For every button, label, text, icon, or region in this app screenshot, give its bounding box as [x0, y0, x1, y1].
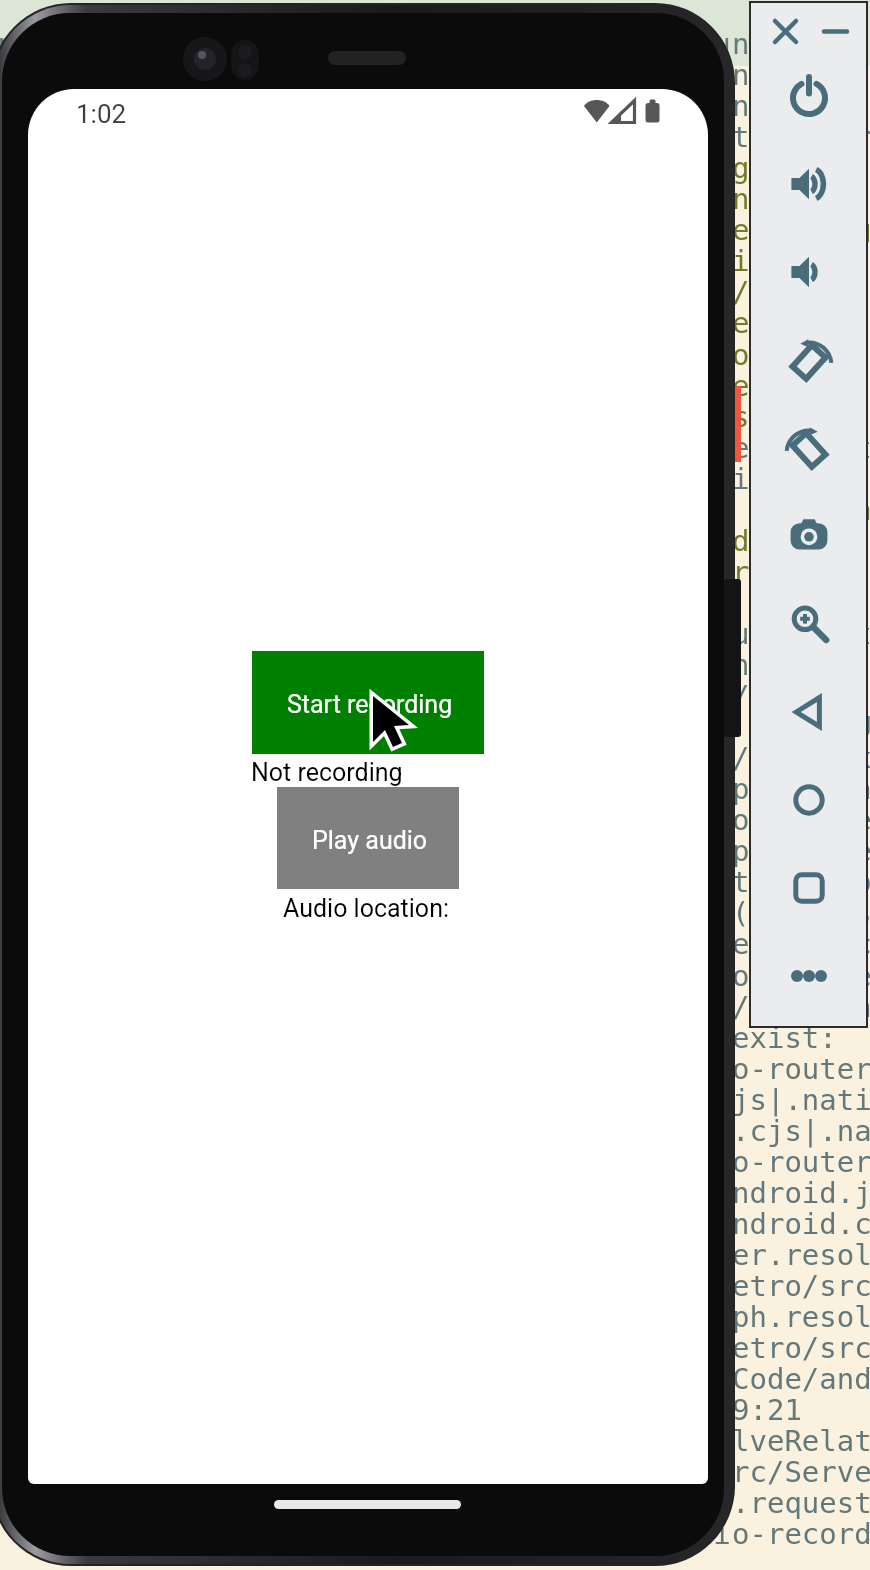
staticText: LOG Stopping recording.. file:/ — [155, 275, 732, 309]
staticText: //data — [732, 275, 837, 309]
staticText: LOG Stopping playback of soun — [190, 524, 732, 558]
staticText: cache — [732, 586, 837, 620]
staticText: n-back — [732, 27, 837, 61]
staticText: Play audio — [312, 826, 428, 855]
staticText: g":101} — [732, 151, 855, 185]
staticText: from /Users — [732, 710, 870, 744]
button[interactable]: Volume down — [749, 228, 868, 316]
staticText: LOG Audio recording permission gra — [102, 182, 731, 216]
staticText: iOS Bundled 102ms node_modules/expo-rout… — [0, 648, 731, 682]
staticText: Not recording — [251, 758, 403, 787]
staticText: /Users/x/Projects/audio-rec/node_modules… — [0, 1207, 535, 1241]
button[interactable]: Overview — [749, 844, 868, 932]
staticText: at path — [732, 493, 870, 527]
staticText: LOG Recording started with sett — [155, 244, 732, 278]
staticText: ry — [732, 555, 767, 589]
staticText: Unable to resolve module ./app/index fro… — [0, 1021, 517, 1055]
staticText: at processModule (metro/src/DeltaBundler… — [0, 1455, 727, 1489]
staticText: /Users/x/app — [732, 741, 870, 775]
staticText: etro/src/nod — [732, 927, 870, 961]
staticText: ings — [732, 244, 802, 278]
staticText: /Users/x/Projects/audio-recording/node_m — [0, 803, 731, 837]
staticText: LOG file:///data/user/0/com.an — [172, 338, 731, 372]
staticText: Start recording — [287, 690, 453, 719]
staticText: 9:21 — [732, 1393, 802, 1427]
staticText: at traverseDependencies.js:13 — [155, 1393, 732, 1427]
staticText: lveRelativePath.js:224:33 — [732, 1424, 870, 1458]
staticText: ph.resolve (metro/src/nod — [732, 1300, 870, 1334]
staticText: .cjs|.native.cjs|.cjs|.nat — [732, 1114, 870, 1148]
staticText: LOG audio recorded and stored — [190, 493, 732, 527]
button[interactable]: Home — [749, 756, 868, 844]
staticText: LOG unloading sound from memo — [190, 555, 732, 589]
staticText: n-back — [732, 89, 837, 123]
staticText: error Unable to resolve module ./app/ind… — [0, 710, 731, 744]
staticText: rc/Server.js:132:12) — [732, 1455, 870, 1489]
staticText: /Users/x/Projects/audio-rec/node_modules… — [0, 1176, 535, 1210]
button[interactable]: Minimize — [817, 13, 853, 49]
staticText: Android Bundled 7182ms node_modules/expo… — [0, 120, 731, 154]
button[interactable]: Screenshot — [749, 492, 868, 580]
staticText: at DependencyGraph.resolveDependency (/U… — [0, 1300, 535, 1334]
staticText: WARN Possible unhandled promis — [172, 431, 731, 465]
staticText: ecording — [732, 213, 870, 247]
staticText: onymous — [732, 338, 855, 372]
staticText: tro-resolver — [732, 865, 870, 899]
staticText: Code/android-debug/metro — [732, 1362, 870, 1396]
staticText: ng — [732, 58, 767, 92]
staticText: d file — [732, 524, 837, 558]
staticText: None of these files exist: /Users/x/ap — [32, 772, 731, 806]
staticText: o-recording/index.js:1:1 — [732, 1517, 870, 1551]
staticText: er.resolve (metro-resolve — [732, 1238, 870, 1272]
staticText: 1:02 — [76, 99, 127, 129]
staticText: LOG Running "main" with {"rootTa — [137, 151, 731, 185]
button[interactable]: Close — [767, 13, 803, 49]
staticText: o-router/entry.js|.native — [732, 1052, 870, 1086]
staticText: e rejection — [732, 431, 870, 465]
button[interactable]: Play audio — [277, 787, 459, 889]
staticText: /Users/x/Projects/audio-rec/node_modules… — [0, 1083, 535, 1117]
staticText: uter/entry.js — [732, 617, 870, 651]
staticText: LOG Loading Sound from cache/r — [172, 369, 731, 403]
staticText: LOG Starting recording.. audio-r — [137, 213, 731, 247]
button[interactable]: Zoom in — [749, 580, 868, 668]
staticText: ter/entry.js — [732, 120, 870, 154]
staticText: js|.native.js|.js|.nativ — [732, 1083, 870, 1117]
staticText: (metro/src/n — [732, 896, 870, 930]
staticText: o-router/entry.android.js — [732, 1145, 870, 1179]
staticText: at DependencyGraph.resolveDependency (m — [15, 927, 731, 961]
staticText: /Users/x/Projects/audio-recording/node_m… — [0, 1145, 692, 1179]
staticText: Audio location: — [283, 894, 449, 923]
staticText: at /Users/x/Library/Application Support — [15, 990, 731, 1024]
staticText: po-router/e — [732, 834, 870, 868]
button[interactable]: Back — [749, 668, 868, 756]
staticText: at ResolutionRequest.resolveDependency (… — [0, 1269, 587, 1303]
staticText: at ModuleResolver.resolveDependency (/Us… — [0, 1238, 517, 1272]
button[interactable]: More options — [749, 932, 868, 1020]
staticText: s — [732, 400, 750, 434]
staticText: at ResolutionRequest.resolveDependency — [15, 896, 731, 930]
button[interactable]: Volume up — [749, 140, 868, 228]
staticText: ed at — [732, 306, 820, 340]
staticText: etro/src/node-haste/Depen — [732, 1269, 870, 1303]
button[interactable]: Power — [749, 52, 868, 140]
staticText: warn Error: Unable to resolve module ./a… — [0, 679, 731, 713]
staticText: .requestProcessor.js:44:9 — [732, 1486, 870, 1520]
staticText: /Users/x/Projects/audio-rec/node_modules… — [0, 1114, 552, 1148]
staticText: $ npx expo start --clear --android -- --… — [0, 27, 731, 61]
staticText: nted — [732, 182, 802, 216]
staticText: ndroid.cjs|.native.androi — [732, 1207, 870, 1241]
staticText: at Object.resolve (/Users/x/Projects/aud… — [0, 1331, 640, 1365]
button[interactable]: Start recording — [252, 651, 484, 754]
button[interactable]: Rotate right — [749, 404, 868, 492]
staticText: /Users/x/Projects/audio-recording/node_m… — [0, 1052, 692, 1086]
staticText: LOG Playing Sound audio file — [207, 400, 731, 434]
staticText: ile — [732, 462, 785, 496]
staticText: etro/src/lib/transformHel — [732, 1331, 870, 1365]
staticText: LOG recording saved to app — [242, 586, 731, 620]
button[interactable]: Rotate left — [749, 316, 868, 404]
staticText: at Object.resolve (metro/src/lib/transf — [15, 959, 731, 993]
staticText: ormHelpers.j — [732, 959, 870, 993]
staticText: ntry.js — [732, 648, 855, 682]
staticText: at Server._processBundleRequest (metro/s… — [0, 1486, 675, 1520]
